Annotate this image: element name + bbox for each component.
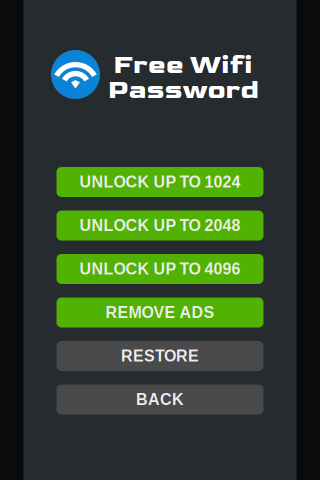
button[interactable]: UNLOCK UP TO 1024 — [56, 167, 263, 197]
button[interactable]: UNLOCK UP TO 4096 — [56, 254, 263, 284]
staticText: Password — [107, 74, 258, 106]
button[interactable]: BACK — [56, 384, 263, 414]
staticText: BACK — [136, 391, 184, 408]
staticText: UNLOCK UP TO 2048 — [79, 217, 240, 234]
button[interactable]: UNLOCK UP TO 2048 — [56, 210, 263, 240]
staticText: Free Wifi — [113, 49, 253, 81]
button[interactable]: REMOVE ADS — [56, 297, 263, 327]
button[interactable]: RESTORE — [56, 341, 263, 371]
staticText: RESTORE — [121, 347, 199, 365]
staticText: UNLOCK UP TO 1024 — [79, 173, 240, 191]
staticText: UNLOCK UP TO 4096 — [79, 260, 240, 278]
staticText: REMOVE ADS — [105, 304, 214, 321]
